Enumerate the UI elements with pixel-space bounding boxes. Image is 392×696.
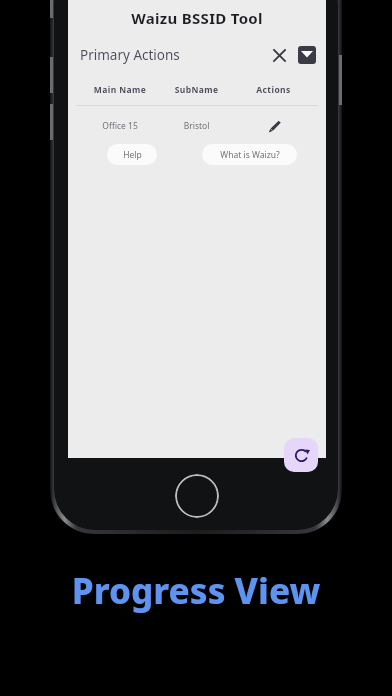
staticText: Actions bbox=[235, 84, 312, 96]
staticText: Primary Actions bbox=[80, 46, 180, 64]
staticText: What is Waizu? bbox=[220, 149, 280, 161]
button[interactable]: Edit bbox=[264, 116, 284, 136]
staticText: Progress View bbox=[0, 567, 392, 615]
button[interactable]: Office 15 bbox=[82, 116, 312, 136]
button[interactable]: Refresh bbox=[284, 438, 318, 472]
staticText: SubName bbox=[158, 84, 235, 96]
staticText: Office 15 bbox=[82, 120, 158, 132]
button[interactable]: Close bbox=[268, 44, 290, 66]
staticText: Waizu BSSID Tool bbox=[68, 8, 326, 28]
staticText: Main Name bbox=[82, 84, 158, 96]
button[interactable]: What is Waizu? bbox=[202, 144, 297, 165]
staticText: Bristol bbox=[158, 120, 235, 132]
button[interactable]: Mail bbox=[298, 46, 316, 64]
staticText: Help bbox=[123, 149, 142, 161]
button[interactable]: Help bbox=[107, 144, 157, 165]
